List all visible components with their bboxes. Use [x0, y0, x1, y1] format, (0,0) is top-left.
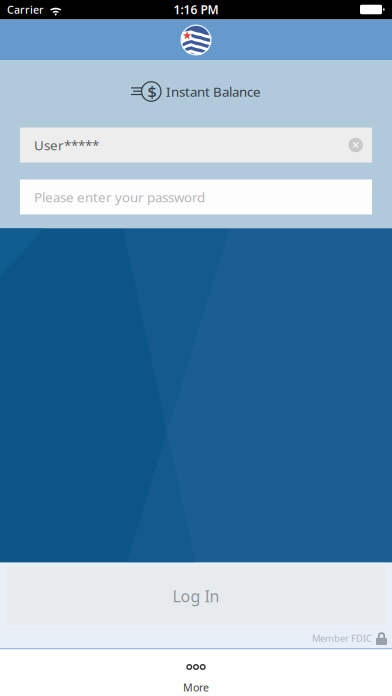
button[interactable]: $	[131, 79, 261, 103]
staticText: 1:16 PM	[173, 1, 218, 17]
staticText: Instant Balance	[166, 83, 261, 100]
button[interactable]: More	[0, 649, 392, 696]
button[interactable]: Clear username	[348, 138, 363, 152]
staticText: $	[147, 81, 156, 102]
staticText: More	[183, 680, 209, 694]
button[interactable]: Bank home	[180, 24, 211, 55]
button[interactable]: Log In	[6, 566, 386, 625]
staticText: Carrier	[7, 2, 44, 17]
staticText: User*****	[34, 136, 99, 154]
staticText: Please enter your password	[34, 188, 205, 206]
staticText: Member FDIC	[312, 632, 372, 644]
staticText: Log In	[172, 585, 219, 607]
